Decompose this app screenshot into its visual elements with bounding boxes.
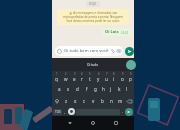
button[interactable]: Voice bbox=[126, 60, 136, 70]
staticText: f bbox=[86, 86, 88, 92]
button[interactable]: h bbox=[99, 83, 107, 95]
staticText: 8 bbox=[113, 72, 115, 76]
button[interactable]: 6 bbox=[94, 71, 102, 83]
staticText: i bbox=[113, 76, 115, 82]
button[interactable]: m bbox=[116, 95, 125, 107]
staticText: 2 bbox=[65, 72, 67, 76]
button[interactable]: Send bbox=[125, 47, 134, 56]
staticText: , bbox=[64, 109, 66, 114]
button[interactable]: Oi tudo bem com você bbox=[55, 46, 123, 56]
button[interactable]: 0 bbox=[126, 71, 134, 83]
staticText: o bbox=[121, 76, 124, 82]
staticText: z bbox=[65, 98, 68, 104]
staticText: 9 bbox=[122, 72, 124, 76]
button[interactable]: 2 bbox=[61, 71, 70, 83]
staticText: . bbox=[122, 109, 124, 114]
staticText: w bbox=[64, 76, 68, 82]
staticText: Oi tudo bem com você bbox=[64, 48, 109, 54]
button[interactable]: ?123 bbox=[53, 109, 62, 115]
staticText: ?123 bbox=[55, 110, 61, 114]
staticText: Oi tudo bbox=[87, 63, 99, 67]
button[interactable]: Recents bbox=[111, 118, 121, 128]
button[interactable]: b bbox=[98, 95, 107, 107]
staticText: x bbox=[74, 98, 77, 104]
button[interactable]: Home bbox=[88, 118, 98, 128]
button[interactable]: 1 bbox=[52, 71, 61, 83]
button[interactable]: Oi tudo bbox=[52, 58, 134, 71]
staticText: a bbox=[58, 86, 61, 92]
button[interactable]: n bbox=[107, 95, 116, 107]
button[interactable]: . bbox=[120, 107, 125, 116]
button[interactable]: Voice input bbox=[67, 107, 76, 116]
button[interactable]: Enter bbox=[125, 108, 133, 116]
button[interactable]: 9 bbox=[118, 71, 126, 83]
button[interactable]: Back bbox=[65, 118, 75, 128]
staticText: r bbox=[81, 76, 83, 82]
staticText: t bbox=[89, 76, 91, 82]
button[interactable]: a bbox=[55, 83, 64, 95]
staticText: c bbox=[83, 98, 86, 104]
button[interactable]: Backspace bbox=[125, 95, 134, 107]
staticText: b bbox=[101, 98, 104, 104]
staticText: l bbox=[126, 86, 128, 92]
staticText: 🔒 As mensagens e chamadas sao criptograf… bbox=[61, 11, 125, 23]
other: Camera bbox=[117, 49, 121, 53]
staticText: e bbox=[73, 76, 76, 82]
staticText: HOJE bbox=[89, 2, 97, 6]
button[interactable]: 7 bbox=[102, 71, 110, 83]
button[interactable]: l bbox=[123, 83, 131, 95]
staticText: 7 bbox=[106, 72, 108, 76]
button[interactable]: 4 bbox=[78, 71, 86, 83]
staticText: 4 bbox=[81, 72, 83, 76]
button[interactable]: 3 bbox=[70, 71, 78, 83]
staticText: Oi Lais bbox=[105, 29, 119, 35]
button[interactable]: z bbox=[61, 95, 71, 107]
staticText: g bbox=[94, 86, 97, 92]
staticText: 6 bbox=[98, 72, 100, 76]
staticText: n bbox=[110, 98, 113, 104]
staticText: q bbox=[55, 76, 58, 82]
staticText: 1 bbox=[56, 72, 58, 76]
button[interactable]: 5 bbox=[86, 71, 94, 83]
button[interactable]: Oi Lais bbox=[102, 28, 131, 36]
staticText: 5 bbox=[89, 72, 91, 76]
button[interactable]: v bbox=[89, 95, 98, 107]
button[interactable]: c bbox=[80, 95, 89, 107]
button[interactable]: 🔒 As mensagens e chamadas sao criptograf… bbox=[57, 9, 129, 25]
button[interactable]: j bbox=[107, 83, 115, 95]
staticText: k bbox=[118, 86, 121, 92]
button[interactable]: x bbox=[71, 95, 80, 107]
staticText: p bbox=[129, 76, 132, 82]
staticText: s bbox=[67, 86, 70, 92]
button[interactable]: Shift bbox=[52, 95, 61, 107]
staticText: j bbox=[110, 86, 112, 92]
staticText: u bbox=[105, 76, 108, 82]
staticText: h bbox=[102, 86, 105, 92]
staticText: m bbox=[118, 98, 123, 104]
staticText: v bbox=[92, 98, 95, 104]
button[interactable]: s bbox=[64, 83, 73, 95]
staticText: 14:22 bbox=[121, 31, 129, 35]
staticText: 3 bbox=[74, 72, 76, 76]
button[interactable]: d bbox=[73, 83, 82, 95]
staticText: d bbox=[76, 86, 79, 92]
staticText: y bbox=[97, 76, 100, 82]
button[interactable]: 8 bbox=[110, 71, 118, 83]
button[interactable]: k bbox=[115, 83, 123, 95]
button[interactable]: g bbox=[91, 83, 99, 95]
staticText: 0 bbox=[130, 72, 132, 76]
button[interactable]: f bbox=[82, 83, 91, 95]
button[interactable]: , bbox=[62, 107, 67, 116]
other: Attach bbox=[111, 49, 115, 53]
